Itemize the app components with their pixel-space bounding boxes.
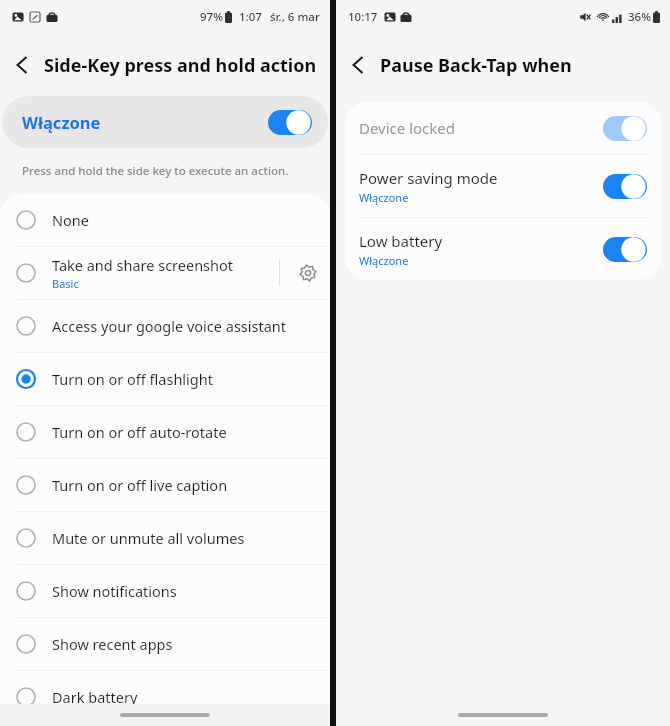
button[interactable]: Show notifications [0,565,330,617]
staticText: Turn on or off flashlight [52,369,213,389]
staticText: Side-Key press and hold action [44,53,317,78]
button[interactable]: Toggle [603,116,647,141]
button[interactable]: None [0,194,330,246]
staticText: Włączone [359,190,409,205]
button[interactable]: Power saving mode [345,155,661,217]
button[interactable]: Take and share screenshot [0,247,330,299]
staticText: Włączone [359,253,409,268]
staticText: 97% [200,9,223,25]
button[interactable]: Mute or unmute all volumes [0,512,330,564]
staticText: Access your google voice assistant [52,316,287,336]
staticText: Mute or unmute all volumes [52,528,245,548]
staticText: Turn on or off live caption [52,475,228,495]
staticText: Power saving mode [359,168,498,188]
staticText: Take and share screenshot [52,255,234,275]
button[interactable]: Back [0,43,44,87]
button[interactable]: Turn on or off auto-rotate [0,406,330,458]
staticText: Show notifications [52,581,177,601]
button[interactable]: Access your google voice assistant [0,300,330,352]
staticText: Włączone [22,111,101,133]
staticText: 1:07 [239,9,262,25]
staticText: Show recent apps [52,634,173,654]
staticText: Low battery [359,231,443,251]
staticText: Device locked [359,118,456,138]
button[interactable]: Toggle [268,110,312,135]
button[interactable]: Turn on or off flashlight [0,353,330,405]
button[interactable]: Toggle [603,237,647,262]
button[interactable]: Włączone [2,96,328,148]
staticText: 10:17 [348,9,378,25]
button[interactable]: Toggle [603,174,647,199]
staticText: Basic [52,276,79,291]
button[interactable]: Low battery [345,218,661,280]
button[interactable]: Dark battery [0,671,330,723]
button[interactable]: Device locked [345,102,661,154]
staticText: Pause Back-Tap when [380,53,572,78]
staticText: None [52,210,89,230]
staticText: Turn on or off auto-rotate [52,422,227,442]
button[interactable]: Settings [286,251,330,295]
button[interactable]: Turn on or off live caption [0,459,330,511]
staticText: Press and hold the side key to execute a… [22,163,289,179]
staticText: śr., 6 mar [270,9,320,25]
staticText: 36% [628,9,651,25]
button[interactable]: Back [336,43,380,87]
staticText: Dark battery [52,687,138,707]
button[interactable]: Show recent apps [0,618,330,670]
